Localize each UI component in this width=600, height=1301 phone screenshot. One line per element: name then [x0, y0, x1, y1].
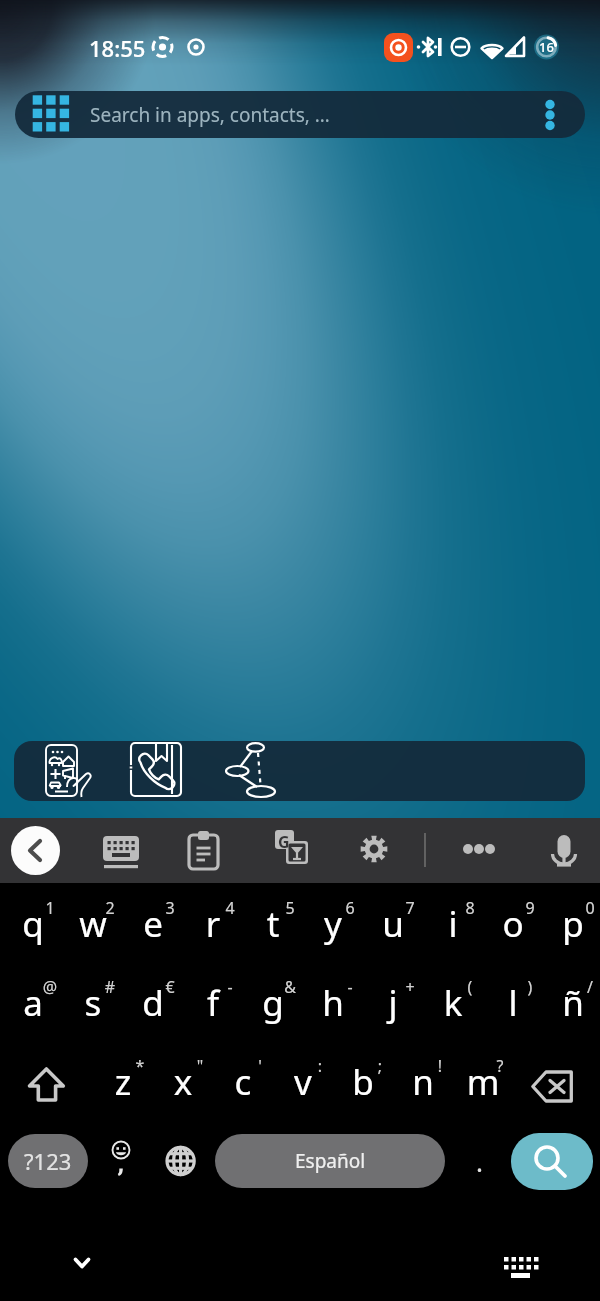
- staticText: !: [427, 1055, 453, 1077]
- button[interactable]: r: [180, 882, 240, 956]
- button[interactable]: Search: [511, 1133, 593, 1190]
- button[interactable]: h: [300, 961, 360, 1035]
- button[interactable]: k: [420, 961, 480, 1035]
- staticText: h: [303, 979, 363, 1027]
- staticText: Español: [295, 1148, 366, 1174]
- button[interactable]: a: [0, 961, 60, 1035]
- staticText: c: [213, 1058, 273, 1106]
- button[interactable]: e: [120, 882, 180, 956]
- staticText: &: [277, 976, 303, 998]
- staticText: +: [397, 976, 423, 998]
- staticText: s: [63, 979, 123, 1027]
- staticText: o: [483, 900, 543, 948]
- staticText: #: [97, 976, 123, 998]
- staticText: ?: [487, 1055, 513, 1077]
- button[interactable]: Shift: [15, 1055, 79, 1115]
- button[interactable]: ñ: [540, 961, 600, 1035]
- staticText: .: [476, 1144, 483, 1179]
- staticText: v: [273, 1058, 333, 1106]
- button[interactable]: Switch keyboard: [488, 1238, 548, 1278]
- button[interactable]: p: [540, 882, 600, 956]
- button[interactable]: z: [90, 1040, 150, 1114]
- staticText: w: [63, 900, 123, 948]
- staticText: @: [37, 976, 63, 998]
- button[interactable]: y: [300, 882, 360, 956]
- button[interactable]: .: [452, 1134, 506, 1188]
- staticText: (: [457, 976, 483, 998]
- staticText: 9: [517, 897, 543, 919]
- staticText: n: [393, 1058, 453, 1106]
- staticText: x: [153, 1058, 213, 1106]
- button[interactable]: q: [0, 882, 60, 956]
- button[interactable]: v: [270, 1040, 330, 1114]
- staticText: 16: [539, 38, 554, 56]
- staticText: 8: [457, 897, 483, 919]
- button[interactable]: Change language: [152, 1134, 210, 1188]
- button[interactable]: Español: [215, 1134, 445, 1188]
- button[interactable]: c: [210, 1040, 270, 1114]
- staticText: 3: [157, 897, 183, 919]
- staticText: l: [483, 979, 543, 1027]
- button[interactable]: t: [240, 882, 300, 956]
- button[interactable]: u: [360, 882, 420, 956]
- button[interactable]: g: [240, 961, 300, 1035]
- button[interactable]: d: [120, 961, 180, 1035]
- button[interactable]: n: [390, 1040, 450, 1114]
- staticText: 6: [337, 897, 363, 919]
- staticText: r: [183, 900, 243, 948]
- button[interactable]: Hide keyboard: [52, 1238, 112, 1278]
- staticText: d: [123, 979, 183, 1027]
- staticText: g: [243, 979, 303, 1027]
- button[interactable]: Search in apps, contacts, …: [15, 91, 585, 138]
- staticText: j: [363, 979, 423, 1027]
- staticText: *: [127, 1055, 153, 1077]
- staticText: 4: [217, 897, 243, 919]
- staticText: e: [123, 900, 183, 948]
- button[interactable]: b: [330, 1040, 390, 1114]
- staticText: ": [187, 1055, 213, 1077]
- staticText: a: [3, 979, 63, 1027]
- staticText: ;: [367, 1055, 393, 1077]
- button[interactable]: f: [180, 961, 240, 1035]
- staticText: 5: [277, 897, 303, 919]
- staticText: k: [423, 979, 483, 1027]
- button[interactable]: s: [60, 961, 120, 1035]
- staticText: b: [333, 1058, 393, 1106]
- staticText: 2: [97, 897, 123, 919]
- staticText: f: [183, 979, 243, 1027]
- button[interactable]: m: [450, 1040, 510, 1114]
- staticText: u: [363, 900, 423, 948]
- staticText: 18:55: [89, 33, 146, 63]
- button[interactable]: Backspace: [525, 1060, 585, 1115]
- staticText: ': [247, 1055, 273, 1077]
- staticText: y: [303, 900, 363, 948]
- button[interactable]: j: [360, 961, 420, 1035]
- staticText: Search in apps, contacts, …: [90, 102, 330, 128]
- staticText: -: [217, 976, 243, 998]
- button[interactable]: i: [420, 882, 480, 956]
- button[interactable]: l: [480, 961, 540, 1035]
- staticText: i: [423, 900, 483, 948]
- button[interactable]: o: [480, 882, 540, 956]
- button[interactable]: ?123: [8, 1134, 88, 1188]
- staticText: G: [278, 831, 290, 853]
- staticText: t: [243, 900, 303, 948]
- staticText: ñ: [543, 979, 600, 1027]
- staticText: 0: [577, 897, 600, 919]
- staticText: q: [3, 900, 63, 948]
- button[interactable]: w: [60, 882, 120, 956]
- staticText: -: [337, 976, 363, 998]
- staticText: ): [517, 976, 543, 998]
- staticText: :: [307, 1055, 333, 1077]
- staticText: p: [543, 900, 600, 948]
- staticText: m: [453, 1058, 513, 1106]
- button[interactable]: Emoji: [92, 1134, 150, 1188]
- staticText: 1: [37, 897, 63, 919]
- button[interactable]: Back: [11, 826, 60, 875]
- staticText: ?123: [24, 1146, 72, 1176]
- staticText: 7: [397, 897, 423, 919]
- staticText: /: [577, 976, 600, 998]
- staticText: z: [93, 1058, 153, 1106]
- staticText: €: [157, 976, 183, 998]
- button[interactable]: x: [150, 1040, 210, 1114]
